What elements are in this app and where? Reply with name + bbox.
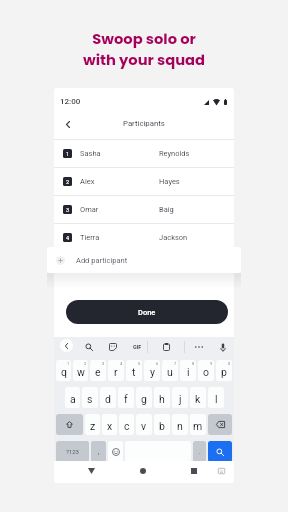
button[interactable]: .	[193, 441, 206, 462]
button[interactable]: k	[190, 387, 206, 408]
staticText: g	[141, 393, 147, 405]
staticText: Reynolds	[159, 149, 190, 158]
button[interactable]: Search	[208, 441, 232, 462]
button[interactable]: l	[208, 387, 224, 408]
button[interactable]: ,	[91, 441, 106, 462]
staticText: Done	[138, 308, 156, 317]
staticText: 9	[210, 361, 213, 366]
button[interactable]: p	[216, 360, 232, 381]
button[interactable]: z	[85, 414, 100, 435]
button[interactable]: 3	[54, 196, 234, 223]
staticText: n	[177, 420, 183, 432]
button[interactable]: Back	[59, 115, 77, 133]
button[interactable]: j	[172, 387, 188, 408]
button[interactable]: Clipboard	[159, 340, 173, 354]
staticText: s	[87, 393, 93, 405]
staticText: c	[124, 420, 130, 432]
staticText: 1	[67, 361, 70, 366]
staticText: 3	[102, 361, 105, 366]
button[interactable]: Stickers	[106, 340, 120, 354]
staticText: 12:00	[60, 97, 81, 106]
button[interactable]: m	[190, 414, 206, 435]
button[interactable]: Backspace	[208, 414, 232, 435]
staticText: f	[124, 393, 128, 405]
button[interactable]: f	[118, 387, 134, 408]
staticText: r	[114, 366, 118, 378]
button[interactable]: o	[198, 360, 214, 381]
button[interactable]: u	[162, 360, 178, 381]
staticText: z	[90, 420, 96, 432]
staticText: x	[107, 420, 113, 432]
staticText: q	[61, 366, 67, 378]
staticText: 7	[174, 361, 177, 366]
staticText: a	[70, 393, 76, 405]
button[interactable]: GIF keyboard	[129, 340, 145, 354]
staticText: b	[159, 420, 165, 432]
staticText: 6	[156, 361, 159, 366]
staticText: GIF	[133, 344, 142, 350]
button[interactable]: Done	[66, 300, 228, 324]
staticText: Jackson	[159, 233, 188, 242]
button[interactable]: Recents	[186, 463, 202, 479]
button[interactable]: 2	[54, 168, 234, 195]
button[interactable]: Close toolbar	[60, 339, 73, 352]
staticText: Add participant	[76, 256, 128, 265]
button[interactable]: ?123	[56, 441, 89, 462]
button[interactable]: c	[119, 414, 134, 435]
button[interactable]: More options	[192, 340, 206, 354]
staticText: .	[199, 448, 201, 456]
button[interactable]: g	[136, 387, 152, 408]
staticText: Participants	[123, 119, 165, 128]
button[interactable]: Shift	[56, 414, 83, 435]
button[interactable]: h	[154, 387, 170, 408]
button[interactable]: e	[90, 360, 106, 381]
staticText: l	[215, 393, 218, 405]
staticText: 8	[192, 361, 195, 366]
staticText: 4	[66, 235, 70, 241]
staticText: ,	[98, 448, 100, 456]
button[interactable]: v	[136, 414, 152, 435]
button[interactable]: y	[144, 360, 160, 381]
staticText: 2	[84, 361, 87, 366]
staticText: ?123	[66, 448, 79, 455]
staticText: 0	[228, 361, 231, 366]
staticText: e	[95, 366, 101, 378]
button[interactable]: s	[82, 387, 98, 408]
button[interactable]: q	[56, 360, 71, 381]
staticText: Omar	[80, 205, 99, 214]
button[interactable]: t	[126, 360, 142, 381]
staticText: Hayes	[159, 177, 180, 186]
staticText: h	[159, 393, 165, 405]
staticText: d	[105, 393, 111, 405]
button[interactable]: Add participant	[47, 247, 241, 273]
button[interactable]: 4	[54, 224, 234, 251]
button[interactable]: Voice input	[216, 340, 230, 354]
button[interactable]: x	[102, 414, 117, 435]
staticText: m	[193, 420, 203, 432]
staticText: v	[141, 420, 147, 432]
staticText: u	[167, 366, 173, 378]
button[interactable]: r	[108, 360, 124, 381]
button[interactable]: Switch keyboard	[214, 464, 228, 478]
staticText: 2	[66, 179, 70, 185]
button[interactable]: i	[180, 360, 196, 381]
button[interactable]: b	[154, 414, 170, 435]
staticText: t	[132, 366, 136, 378]
button[interactable]: Home	[135, 463, 151, 479]
button[interactable]: a	[65, 387, 80, 408]
staticText: Alex	[80, 177, 95, 186]
button[interactable]: Search	[82, 340, 96, 354]
staticText: 1	[66, 151, 70, 157]
button[interactable]: d	[100, 387, 116, 408]
staticText: k	[195, 393, 201, 405]
button[interactable]: 1	[54, 140, 234, 167]
button[interactable]: Emoji	[108, 441, 123, 462]
staticText: w	[77, 366, 85, 378]
staticText: 3	[66, 207, 70, 213]
button[interactable]: Back	[83, 463, 99, 479]
staticText: Swoop solo or	[92, 29, 196, 50]
staticText: y	[150, 366, 155, 378]
button[interactable]: w	[73, 360, 88, 381]
button[interactable]: n	[172, 414, 188, 435]
